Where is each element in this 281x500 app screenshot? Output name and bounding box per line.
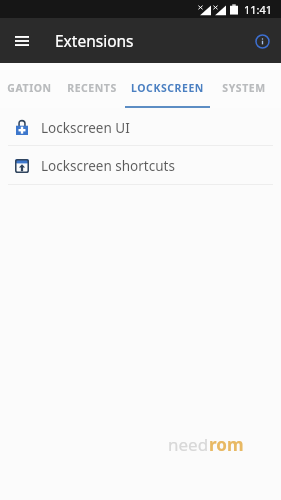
button[interactable]: Open navigation menu	[7, 26, 37, 56]
button[interactable]: LOCKSCREEN	[125, 63, 210, 108]
staticText: RECENTS	[67, 81, 117, 95]
staticText: 11:41	[244, 2, 273, 17]
staticText: need	[168, 433, 209, 456]
button[interactable]: SYSTEM	[210, 63, 277, 108]
staticText: LOCKSCREEN	[131, 81, 204, 95]
button[interactable]: Information	[248, 27, 276, 55]
staticText: Lockscreen UI	[41, 119, 130, 137]
staticText: GATION	[7, 81, 52, 95]
button[interactable]: GATION	[0, 63, 59, 108]
staticText: Extensions	[55, 30, 134, 51]
button[interactable]: Lockscreen shortcuts	[0, 146, 281, 184]
staticText: rom	[209, 433, 244, 456]
button[interactable]: RECENTS	[59, 63, 125, 108]
staticText: SYSTEM	[222, 81, 266, 95]
staticText: Lockscreen shortcuts	[41, 157, 175, 175]
button[interactable]: Lockscreen UI	[0, 109, 281, 145]
